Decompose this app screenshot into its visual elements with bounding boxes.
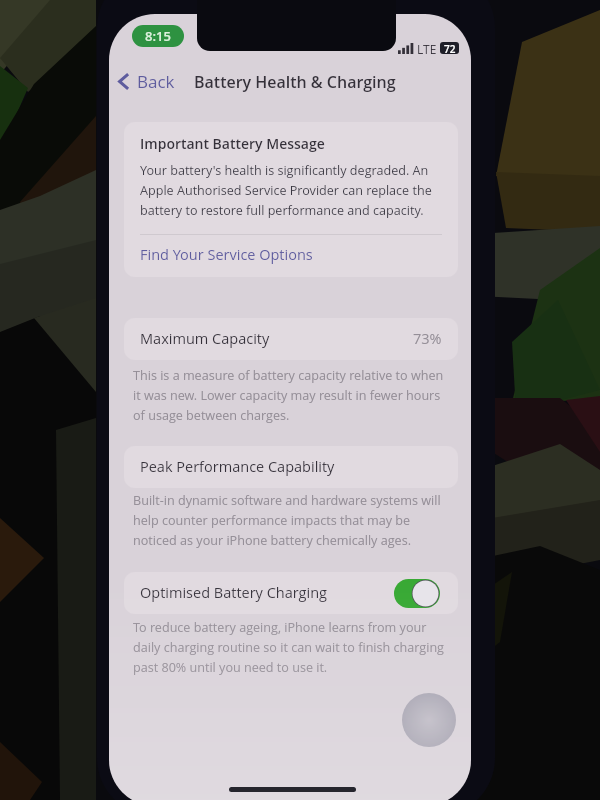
staticText: Your battery's health is significantly d… xyxy=(140,162,436,219)
staticText: Important Battery Message xyxy=(140,134,325,153)
staticText: LTE xyxy=(417,41,437,57)
staticText: Maximum Capacity xyxy=(140,329,270,349)
staticText: Battery Health & Charging xyxy=(194,71,396,93)
staticText: To reduce battery ageing, iPhone learns … xyxy=(133,619,451,676)
staticText: Find Your Service Options xyxy=(140,245,313,265)
staticText: Built-in dynamic software and hardware s… xyxy=(133,492,445,549)
staticText: Peak Performance Capability xyxy=(140,457,335,477)
staticText: 8:15 xyxy=(145,27,171,45)
staticText: Optimised Battery Charging xyxy=(140,583,327,603)
button[interactable]: Maximum Capacity xyxy=(124,318,458,360)
button[interactable]: Back xyxy=(114,65,179,97)
button[interactable]: Peak Performance Capability xyxy=(124,446,458,488)
button[interactable]: Optimised Battery Charging xyxy=(124,572,458,614)
staticText: This is a measure of battery capacity re… xyxy=(133,367,445,424)
button[interactable]: Find Your Service Options xyxy=(140,245,313,265)
staticText: 72 xyxy=(444,42,456,54)
staticText: 73% xyxy=(413,329,442,349)
staticText: Back xyxy=(137,70,175,93)
button[interactable]: Optimised Battery Charging toggle xyxy=(394,579,440,608)
